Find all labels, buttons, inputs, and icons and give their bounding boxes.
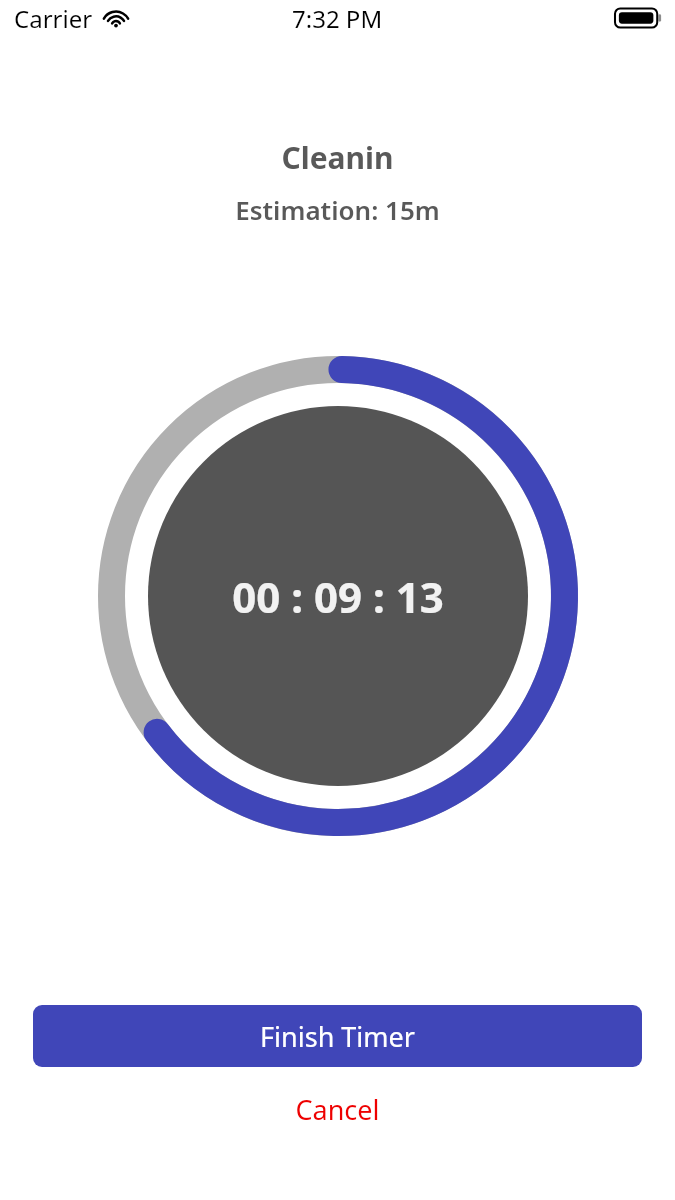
button[interactable]: Finish Timer [33,1005,642,1067]
staticText: Carrier [14,2,93,35]
button[interactable]: Cancel [271,1083,404,1136]
staticText: Estimation: 15m [235,192,440,227]
staticText: Cancel [295,1091,380,1128]
staticText: 7:32 PM [292,2,383,35]
staticText: Cleanin [281,137,394,178]
staticText: 00 : 09 : 13 [232,568,444,625]
staticText: Finish Timer [260,1018,415,1055]
